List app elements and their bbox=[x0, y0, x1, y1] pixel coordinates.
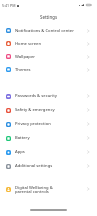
button[interactable]: Wallpaper bbox=[2, 50, 95, 63]
button[interactable]: Notifications & Control center bbox=[2, 24, 95, 37]
staticText: 5:41 PM bbox=[2, 3, 16, 8]
staticText: Battery bbox=[15, 135, 30, 141]
button[interactable]: Privacy protection bbox=[2, 117, 95, 131]
button[interactable]: Themes bbox=[2, 63, 95, 76]
staticText: Settings bbox=[40, 14, 58, 20]
staticText: Themes bbox=[15, 67, 31, 73]
staticText: Additional settings bbox=[15, 163, 53, 169]
button[interactable]: Home screen bbox=[2, 37, 95, 50]
staticText: Wallpaper bbox=[15, 54, 36, 60]
staticText: Apps bbox=[15, 149, 25, 155]
button[interactable]: Additional settings bbox=[2, 159, 95, 173]
staticText: Notifications & Control center bbox=[15, 28, 74, 34]
staticText: Privacy protection bbox=[15, 121, 51, 127]
staticText: Digital Wellbeing & parental controls bbox=[15, 185, 53, 194]
button[interactable]: Safety & emergency bbox=[2, 103, 95, 117]
staticText: Passwords & security bbox=[15, 93, 57, 99]
button[interactable]: Digital Wellbeing & parental controls bbox=[2, 180, 95, 198]
button[interactable]: Battery bbox=[2, 131, 95, 145]
staticText: Home screen bbox=[15, 41, 42, 47]
button[interactable]: Apps bbox=[2, 145, 95, 159]
button[interactable]: Passwords & security bbox=[2, 89, 95, 103]
staticText: Safety & emergency bbox=[15, 107, 55, 113]
